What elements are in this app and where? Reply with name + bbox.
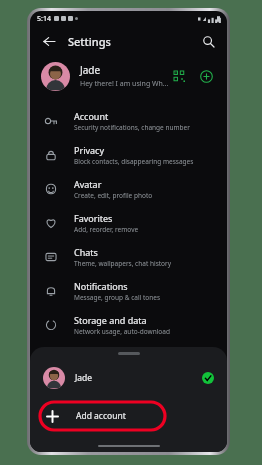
button[interactable]: Add account: [30, 401, 227, 431]
staticText: Create, edit, profile photo: [74, 191, 153, 200]
staticText: Theme, wallpapers, chat history: [74, 259, 172, 268]
staticText: Network usage, auto-download: [74, 327, 170, 336]
staticText: 5:14: [37, 14, 51, 24]
staticText: Message, group & call tones: [74, 293, 161, 302]
button[interactable]: Back: [39, 31, 59, 51]
button[interactable]: Favorites: [30, 206, 227, 240]
staticText: Hey there! I am using Wha...: [80, 79, 169, 89]
button[interactable]: Chats: [30, 240, 227, 274]
staticText: Security notifications, change number: [74, 123, 190, 132]
staticText: Jade: [80, 63, 101, 77]
staticText: Avatar: [74, 178, 102, 190]
button[interactable]: QR code: [169, 66, 189, 86]
staticText: Add, reorder, remove: [74, 225, 139, 234]
staticText: Favorites: [74, 212, 113, 224]
staticText: Privacy: [74, 144, 105, 156]
staticText: Jade: [75, 372, 93, 384]
staticText: Account: [74, 110, 109, 122]
button[interactable]: Notifications: [30, 274, 227, 308]
button[interactable]: Add: [196, 66, 216, 86]
button[interactable]: Jade: [30, 361, 227, 395]
button[interactable]: Search: [198, 31, 218, 51]
staticText: Storage and data: [74, 314, 147, 326]
staticText: Notifications: [74, 280, 128, 292]
staticText: Add account: [76, 410, 126, 422]
button[interactable]: Storage and data: [30, 308, 227, 342]
button[interactable]: Account: [30, 104, 227, 138]
staticText: Block contacts, disappearing messages: [74, 157, 194, 166]
staticText: Chats: [74, 246, 98, 258]
staticText: Settings: [68, 34, 111, 49]
button[interactable]: Avatar: [30, 172, 227, 206]
button[interactable]: Jade: [30, 56, 227, 96]
button[interactable]: Privacy: [30, 138, 227, 172]
